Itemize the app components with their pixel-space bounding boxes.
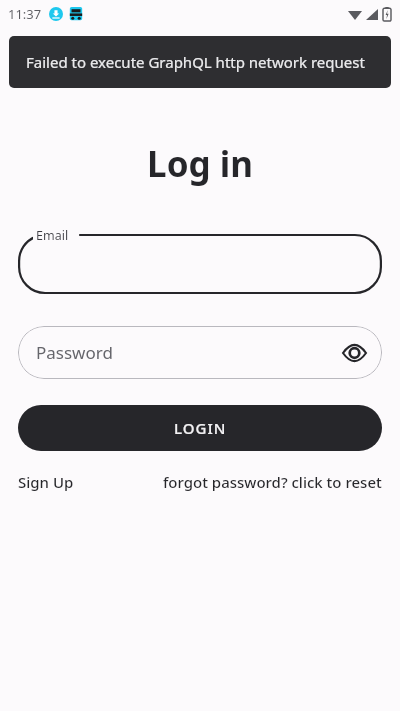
- button[interactable]: Failed to execute GraphQL http network r…: [9, 36, 391, 88]
- staticText: LOGIN: [174, 418, 227, 438]
- button[interactable]: Password: [18, 326, 382, 379]
- staticText: 11:37: [8, 5, 42, 23]
- button[interactable]: Sign Up: [18, 472, 74, 492]
- staticText: Failed to execute GraphQL http network r…: [26, 52, 365, 72]
- staticText: Email: [36, 227, 69, 244]
- staticText: Password: [36, 341, 113, 364]
- button[interactable]: Email: [18, 227, 382, 295]
- button[interactable]: forgot password? click to reset: [163, 472, 382, 492]
- staticText: Sign Up: [18, 472, 74, 492]
- staticText: Log in: [0, 140, 400, 188]
- button[interactable]: Show password: [339, 338, 369, 368]
- staticText: forgot password? click to reset: [163, 472, 382, 492]
- button[interactable]: LOGIN: [18, 405, 382, 451]
